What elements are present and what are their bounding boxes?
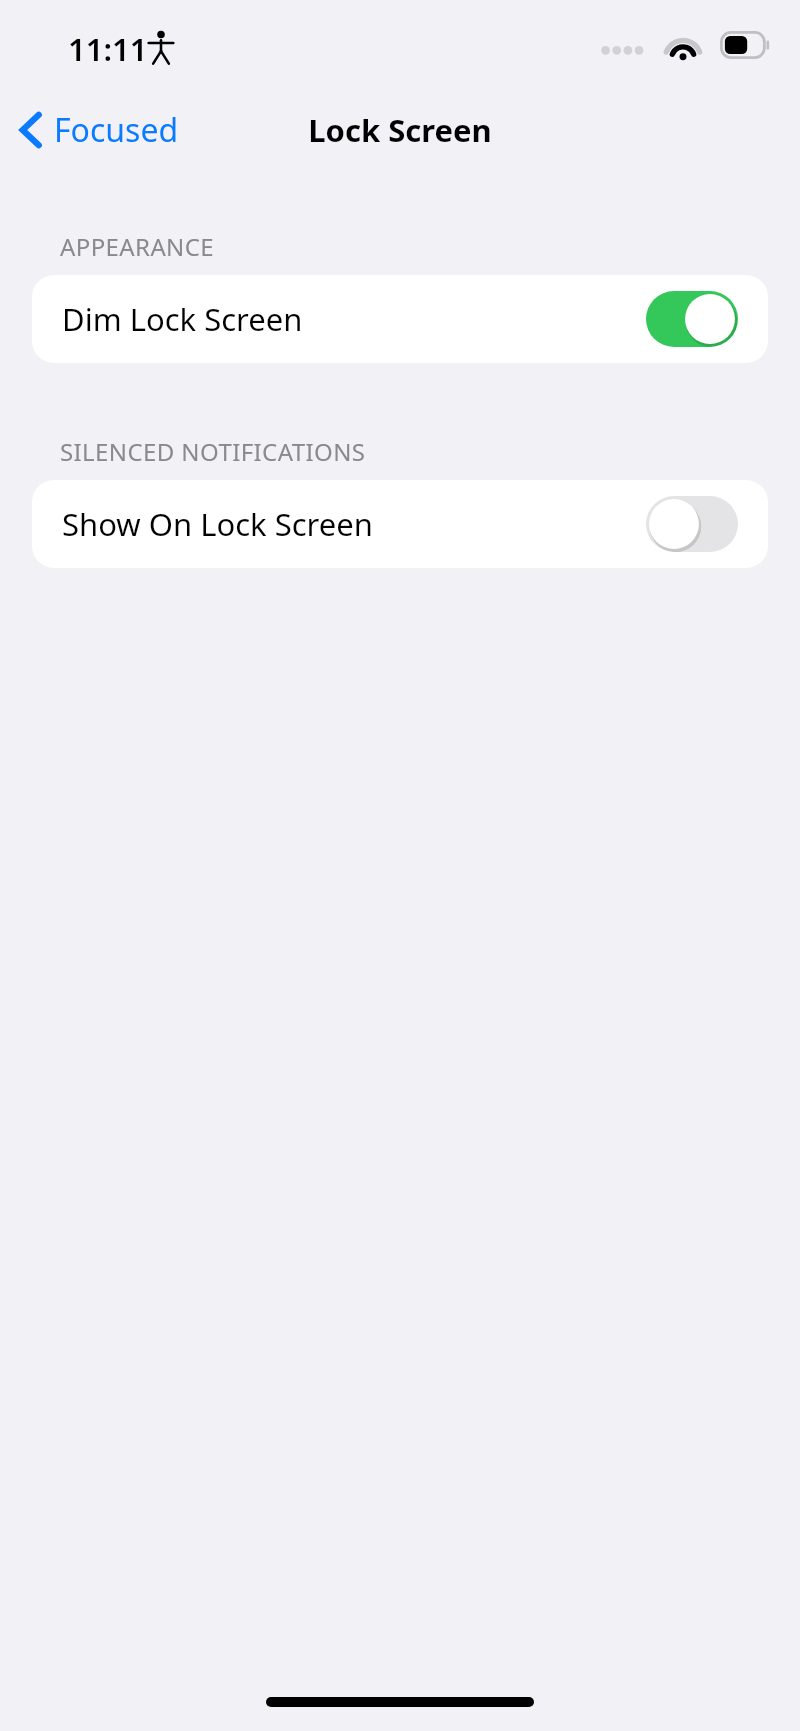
button[interactable]: Dim Lock Screen [32, 275, 768, 363]
staticText: Focused [54, 108, 179, 152]
button[interactable]: Off [646, 496, 738, 552]
staticText: Lock Screen [308, 109, 492, 151]
button[interactable]: On [646, 291, 738, 347]
staticText: Show On Lock Screen [62, 503, 646, 545]
button[interactable]: Focused [10, 102, 187, 158]
staticText: 11:11 [68, 28, 148, 70]
staticText: APPEARANCE [60, 230, 215, 263]
staticText: SILENCED NOTIFICATIONS [60, 435, 366, 468]
button[interactable]: Show On Lock Screen [32, 480, 768, 568]
staticText: Dim Lock Screen [62, 298, 646, 340]
